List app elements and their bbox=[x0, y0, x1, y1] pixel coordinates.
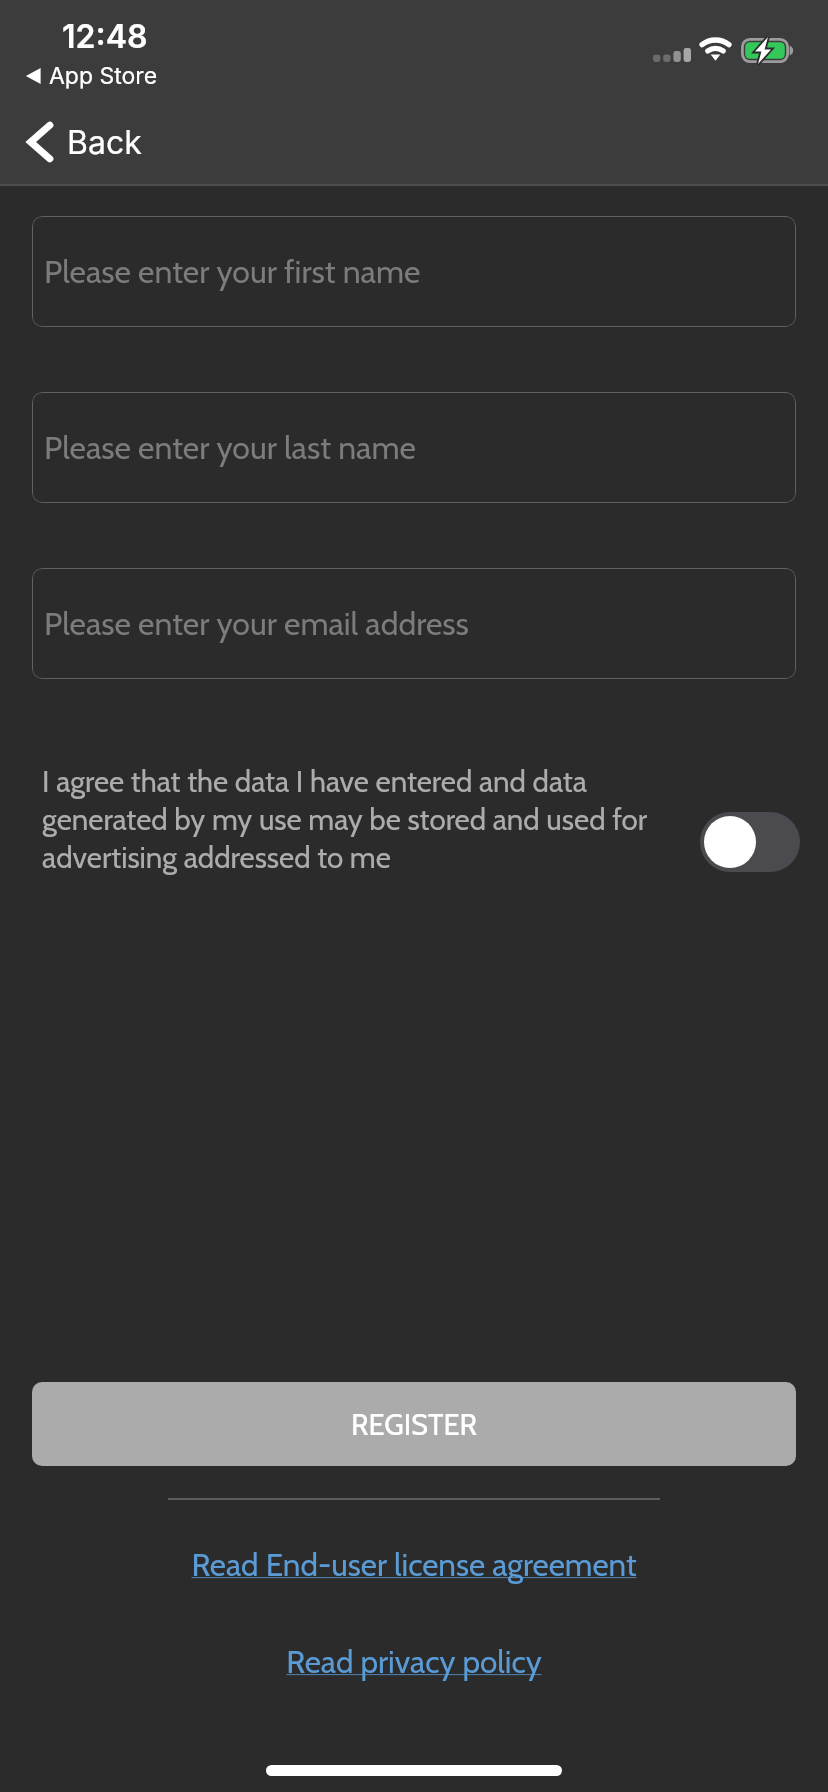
staticText: Please enter your first name bbox=[44, 252, 421, 291]
button[interactable]: Read End-user license agreement bbox=[191, 1546, 637, 1584]
staticText: Please enter your last name bbox=[44, 428, 416, 467]
button[interactable]: Read privacy policy bbox=[286, 1643, 542, 1681]
staticText: App Store bbox=[49, 62, 158, 90]
button[interactable]: Data usage consent toggle bbox=[700, 812, 800, 872]
button[interactable]: Please enter your last name bbox=[32, 392, 796, 503]
staticText: I agree that the data I have entered and… bbox=[42, 764, 682, 875]
button[interactable]: Please enter your first name bbox=[32, 216, 796, 327]
staticText: Back bbox=[67, 123, 142, 162]
button[interactable]: REGISTER bbox=[32, 1382, 796, 1466]
staticText: REGISTER bbox=[351, 1407, 478, 1442]
button[interactable]: Please enter your email address bbox=[32, 568, 796, 679]
staticText: Please enter your email address bbox=[44, 604, 469, 643]
button[interactable]: Back bbox=[0, 100, 828, 184]
staticText: 12:48 bbox=[62, 17, 148, 56]
